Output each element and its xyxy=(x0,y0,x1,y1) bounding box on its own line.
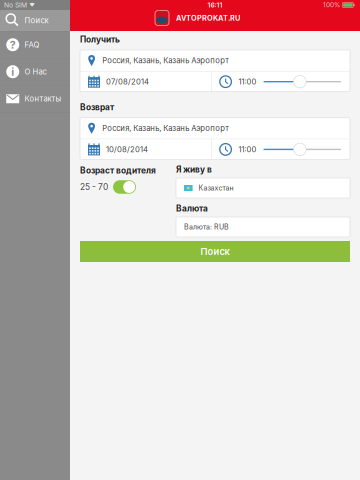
button[interactable]: Россия, Казань, Казань Аэропорт xyxy=(80,50,350,71)
staticText: FAQ xyxy=(24,40,39,49)
button[interactable]: ? xyxy=(0,31,70,58)
staticText: Россия, Казань, Казань Аэропорт xyxy=(102,124,229,133)
staticText: Валюта xyxy=(176,203,208,214)
staticText: 25 - 70 xyxy=(80,182,108,192)
staticText: О Нас xyxy=(24,67,46,76)
staticText: 16:11 xyxy=(207,1,222,9)
staticText: Я живу в xyxy=(176,164,212,175)
staticText: 07/08/2014 xyxy=(106,77,149,86)
button[interactable]: Казахстан xyxy=(176,178,350,198)
staticText: Возраст водителя xyxy=(80,165,156,176)
staticText: Поиск xyxy=(24,16,48,25)
staticText: 100% xyxy=(323,1,340,9)
button[interactable]: 07/08/2014 xyxy=(80,72,211,92)
staticText: Россия, Казань, Казань Аэропорт xyxy=(102,56,229,65)
button[interactable]: 10/08/2014 xyxy=(80,139,211,159)
button[interactable]: Возраст водителя xyxy=(113,180,136,194)
staticText: Контакты xyxy=(24,94,61,103)
staticText: ? xyxy=(10,38,16,51)
button[interactable]: Россия, Казань, Казань Аэропорт xyxy=(80,118,350,139)
staticText: 10/08/2014 xyxy=(106,145,148,154)
button[interactable]: Поиск xyxy=(0,10,70,31)
staticText: AVTOPROKAT.RU xyxy=(176,14,240,22)
staticText: Получить xyxy=(80,34,120,45)
staticText: Валюта: RUB xyxy=(184,223,229,231)
staticText: No SIM xyxy=(4,1,27,9)
button[interactable]: Поиск xyxy=(80,241,350,262)
staticText: 11:00 xyxy=(239,77,257,86)
staticText: Поиск xyxy=(200,246,229,257)
staticText: Казахстан xyxy=(199,184,234,192)
staticText: Возврат xyxy=(80,102,114,112)
button[interactable]: i xyxy=(0,58,70,85)
button[interactable]: Контакты xyxy=(0,85,70,112)
button[interactable]: Валюта: RUB xyxy=(176,217,350,237)
staticText: i xyxy=(11,65,14,78)
staticText: 11:00 xyxy=(239,145,257,154)
